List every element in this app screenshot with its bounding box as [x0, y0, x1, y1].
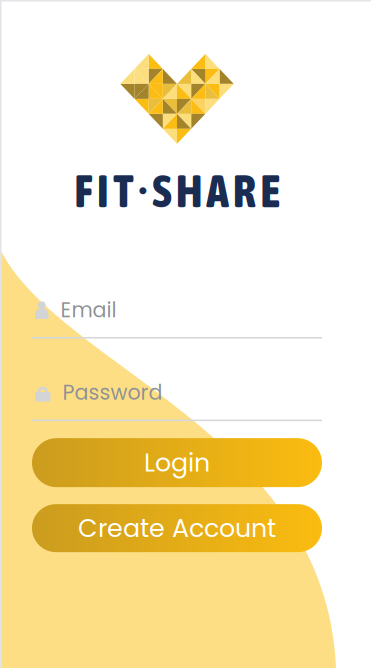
staticText: Create Account	[78, 510, 276, 546]
staticText: Login	[144, 445, 210, 480]
staticText: FIT·SHARE	[74, 165, 279, 217]
button[interactable]: Create Account	[32, 504, 322, 552]
staticText: Email	[60, 295, 116, 324]
button[interactable]: Login	[32, 438, 322, 487]
staticText: Password	[62, 378, 162, 407]
